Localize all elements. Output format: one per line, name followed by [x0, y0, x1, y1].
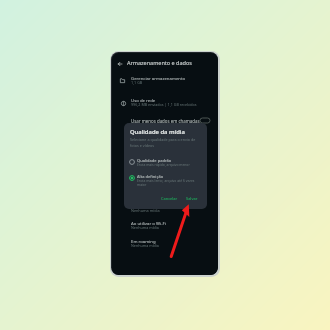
- staticText: Envia mais lento, arquivo até 6 vezes ma…: [137, 178, 197, 187]
- staticText: Usar menos dados em chamadas: [131, 118, 200, 124]
- button[interactable]: Alta definição: [124, 174, 207, 189]
- staticText: Cancelar: [161, 196, 178, 201]
- staticText: Uso de rede: [131, 97, 156, 103]
- staticText: Em roaming: [131, 238, 156, 244]
- staticText: Ao utilizar o Wi-Fi: [131, 220, 166, 226]
- staticText: Selecione a qualidade para o envio de fo…: [130, 137, 201, 148]
- staticText: Nenhuma mídia: [131, 225, 159, 230]
- staticText: Armazenamento e dados: [127, 59, 192, 66]
- staticText: Envia mais rápido, arquivo menor: [137, 162, 197, 167]
- staticText: 1,1 GB: [131, 80, 143, 85]
- staticText: Nenhuma mídia: [131, 243, 159, 248]
- button[interactable]: Cancelar: [158, 194, 181, 203]
- staticText: 996,2 MB enviados | 1,1 GB recebidos: [131, 102, 197, 107]
- button[interactable]: Ao utilizar o Wi-Fi: [112, 219, 219, 232]
- staticText: Alta definição: [137, 174, 164, 179]
- button[interactable]: Gerenciar armazenamento: [112, 74, 219, 87]
- button[interactable]: Usar menos dados em chamadas: [112, 117, 219, 127]
- staticText: Qualidade padrão: [137, 158, 172, 163]
- staticText: Salvar: [186, 196, 198, 201]
- staticText: Nenhuma mídia: [131, 208, 160, 213]
- button[interactable]: Uso de rede: [112, 96, 219, 109]
- button[interactable]: Salvar: [183, 194, 201, 203]
- button[interactable]: Back: [115, 59, 124, 68]
- staticText: Gerenciar armazenamento: [131, 75, 186, 81]
- button[interactable]: Em roaming: [112, 237, 219, 250]
- staticText: Qualidade da mídia: [130, 128, 185, 136]
- button[interactable]: Qualidade padrão: [124, 158, 207, 173]
